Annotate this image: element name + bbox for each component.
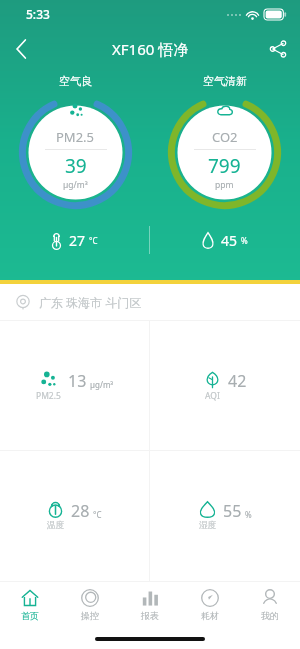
button[interactable]: 湿度 — [150, 451, 300, 581]
button[interactable]: 首页 — [0, 581, 60, 629]
staticText: 13 — [68, 370, 87, 392]
staticText: 27 — [69, 231, 86, 250]
staticText: 我的 — [261, 610, 279, 621]
staticText: PM2.5 — [56, 128, 95, 146]
staticText: 42 — [228, 370, 247, 392]
staticText: CO2 — [212, 128, 238, 146]
staticText: 39 — [65, 153, 87, 179]
button[interactable]: Back — [0, 28, 42, 70]
button[interactable]: 我的 — [240, 581, 300, 629]
staticText: % — [241, 235, 248, 246]
staticText: AQI — [205, 390, 220, 402]
staticText: 28 — [71, 500, 90, 522]
staticText: 温度 — [47, 520, 64, 531]
staticText: 湿度 — [199, 520, 216, 531]
staticText: 首页 — [21, 610, 39, 621]
staticText: °C — [89, 235, 98, 246]
staticText: 799 — [208, 153, 241, 179]
button[interactable]: 耗材 — [180, 581, 240, 629]
staticText: µg/m³ — [90, 379, 114, 390]
staticText: ppm — [215, 179, 234, 191]
staticText: % — [245, 509, 252, 520]
button[interactable]: 报表 — [120, 581, 180, 629]
staticText: 空气良 — [59, 74, 92, 88]
staticText: 广东 珠海市 斗门区 — [39, 294, 142, 310]
button[interactable]: Share — [256, 28, 300, 70]
staticText: 报表 — [141, 610, 159, 621]
staticText: 空气清新 — [203, 74, 247, 88]
button[interactable]: AQI — [150, 321, 300, 450]
button[interactable]: PM2.5 — [0, 321, 149, 450]
staticText: 55 — [223, 500, 242, 522]
staticText: 5:33 — [26, 6, 50, 22]
button[interactable]: 操控 — [60, 581, 120, 629]
staticText: XF160 悟净 — [112, 39, 189, 59]
staticText: 45 — [221, 231, 238, 250]
button[interactable]: 空气清新 — [167, 74, 282, 210]
staticText: PM2.5 — [36, 390, 61, 402]
button[interactable]: 温度 — [0, 451, 149, 581]
staticText: 操控 — [81, 610, 99, 621]
button[interactable]: 广东 珠海市 斗门区 — [0, 284, 300, 320]
button[interactable]: 空气良 — [18, 74, 133, 210]
staticText: °C — [93, 509, 102, 520]
staticText: 耗材 — [201, 610, 219, 621]
staticText: µg/m³ — [63, 179, 88, 191]
